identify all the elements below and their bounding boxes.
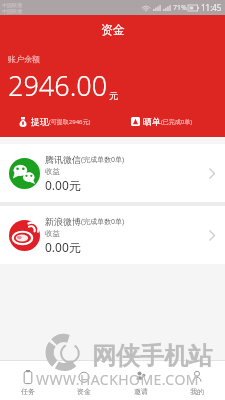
- button[interactable]: 我的: [169, 361, 225, 400]
- staticText: 腾讯微信: [45, 154, 81, 165]
- staticText: 邀请: [134, 387, 148, 396]
- staticText: 0.00元: [45, 239, 81, 255]
- staticText: 2946.00: [8, 67, 108, 104]
- staticText: 我的: [190, 387, 204, 396]
- button[interactable]: 新浪微博: [0, 206, 225, 264]
- staticText: 71%: [173, 3, 187, 13]
- button[interactable]: 任务: [0, 361, 56, 400]
- staticText: 0.00元: [45, 177, 81, 193]
- staticText: (完成单数0单): [81, 155, 125, 165]
- staticText: 资金: [101, 22, 125, 37]
- staticText: 提现: [31, 116, 49, 127]
- staticText: (已完成0单): [161, 118, 193, 126]
- staticText: 资金: [77, 387, 91, 396]
- button[interactable]: 腾讯微信: [0, 144, 225, 202]
- staticText: 11:45: [201, 2, 222, 13]
- staticText: 收益: [45, 167, 60, 176]
- staticText: 账户余额: [8, 54, 40, 64]
- button[interactable]: 提现: [18, 116, 91, 127]
- staticText: (完成单数0单): [81, 217, 125, 227]
- staticText: (可提取2946元): [49, 118, 91, 126]
- staticText: 任务: [21, 387, 35, 396]
- staticText: 新浪微博: [45, 216, 81, 227]
- button[interactable]: 晒单: [131, 116, 193, 127]
- staticText: 中国联通: [2, 8, 22, 14]
- staticText: 元: [109, 90, 118, 101]
- staticText: 网侠手机站: [92, 341, 212, 371]
- staticText: WWW.HACKHOME.COM: [36, 370, 199, 389]
- button[interactable]: 邀请: [113, 361, 169, 400]
- staticText: 收益: [45, 229, 60, 238]
- button[interactable]: 资金: [56, 361, 112, 400]
- staticText: 晒单: [143, 116, 161, 127]
- staticText: 中国联通: [2, 2, 22, 8]
